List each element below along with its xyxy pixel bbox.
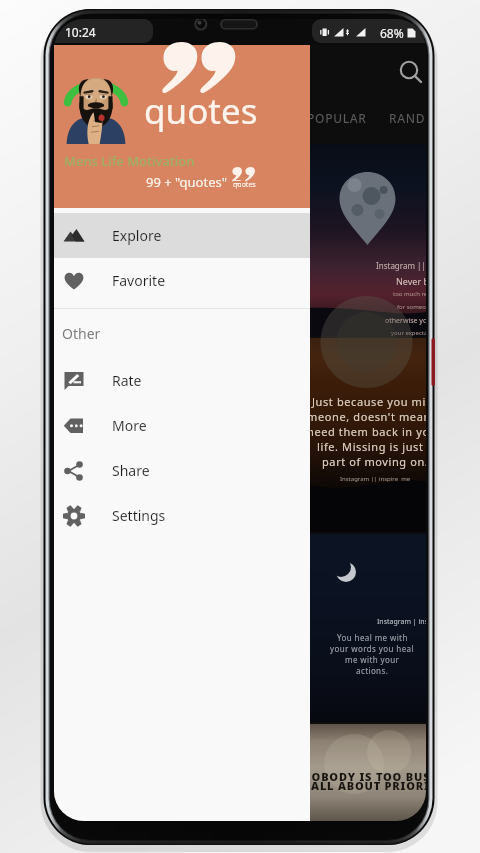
button[interactable]: Rate xyxy=(54,358,310,403)
staticText: Explore xyxy=(112,226,162,245)
staticText: life. Missing is just a xyxy=(317,439,426,454)
button[interactable]: Settings xyxy=(54,493,310,538)
staticText: Rate xyxy=(112,371,142,390)
staticText: your expectation xyxy=(391,329,426,337)
staticText: More xyxy=(112,416,147,435)
button[interactable]: Just because you miss xyxy=(54,338,426,532)
button[interactable]: NOBODY IS TOO BUSY xyxy=(54,724,426,821)
staticText: Instagram || inspire xyxy=(376,260,426,271)
button[interactable]: Instagram || inspire xyxy=(54,144,426,336)
staticText: Other xyxy=(62,324,101,343)
staticText: NOBODY IS TOO BUSY xyxy=(260,769,426,784)
button[interactable]: Share xyxy=(54,448,310,493)
staticText: actions. xyxy=(356,665,389,676)
staticText: Instagram | inspire me xyxy=(377,617,426,627)
staticText: LATEST xyxy=(234,110,279,126)
staticText: too much ready xyxy=(393,290,426,298)
button[interactable]: Instagram | inspire me xyxy=(54,534,426,722)
staticText: me with your xyxy=(345,654,400,665)
button[interactable]: More xyxy=(54,403,310,448)
staticText: Favorite xyxy=(112,271,166,290)
staticText: for someone xyxy=(397,303,426,311)
staticText: IT'S ALL ABOUT PRIORITIES xyxy=(260,778,426,793)
staticText: Settings xyxy=(112,506,166,525)
staticText: someone, doesn't mean you xyxy=(294,409,426,424)
staticText: quotes xyxy=(144,87,258,135)
staticText: part of moving on. xyxy=(322,454,426,469)
staticText: POPULAR xyxy=(307,110,367,126)
staticText: your words you heal xyxy=(330,643,414,654)
button[interactable]: Favorite xyxy=(54,258,310,303)
staticText: need them back in your xyxy=(307,424,426,439)
staticText: quotes xyxy=(233,180,256,190)
staticText: Never be xyxy=(396,275,426,287)
button[interactable]: Search xyxy=(393,55,426,91)
staticText: Share xyxy=(112,461,150,480)
staticText: 99 + "quotes" = xyxy=(146,173,242,191)
staticText: 10:24 xyxy=(65,24,96,40)
staticText: RANDOM xyxy=(389,110,426,126)
staticText: otherwise you will xyxy=(385,316,426,326)
staticText: Just because you miss xyxy=(312,394,426,409)
staticText: 68% xyxy=(380,25,404,41)
staticText: You heal me with xyxy=(337,632,408,643)
button[interactable]: Explore xyxy=(54,213,310,258)
staticText: Mens Life Motivation xyxy=(64,152,195,170)
staticText: Instagram || inspire me xyxy=(340,475,411,483)
